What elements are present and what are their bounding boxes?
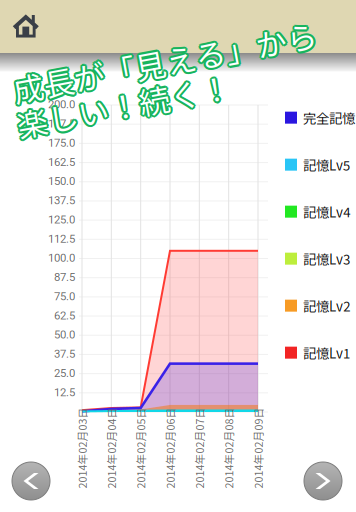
staticText: 成長が「見える」から bbox=[9, 68, 318, 112]
staticText: 楽しい！続く！ bbox=[11, 104, 228, 149]
staticText: 楽しい！続く！ bbox=[15, 103, 232, 147]
staticText: 楽しい！続く！ bbox=[14, 104, 231, 149]
button[interactable]: Home bbox=[0, 0, 52, 53]
staticText: 楽しい！続く！ bbox=[13, 105, 230, 149]
staticText: 2014年02月08日 bbox=[174, 426, 255, 441]
staticText: 成長が「見える」から bbox=[10, 66, 319, 111]
staticText: 成長が「見える」から bbox=[9, 70, 318, 114]
staticText: 137.5 bbox=[48, 194, 75, 207]
staticText: 楽しい！続く！ bbox=[14, 101, 231, 146]
staticText: 162.5 bbox=[48, 155, 75, 169]
staticText: 成長が「見える」から bbox=[9, 66, 318, 110]
staticText: 楽しい！続く！ bbox=[13, 103, 230, 147]
staticText: 2014年02月05日 bbox=[86, 426, 167, 441]
staticText: 2014年02月09日 bbox=[203, 426, 284, 441]
button[interactable]: Next page bbox=[304, 462, 342, 500]
staticText: 楽しい！続く！ bbox=[13, 101, 230, 145]
staticText: 成長が「見える」から bbox=[7, 69, 316, 114]
staticText: 記憶Lv4 bbox=[303, 202, 350, 221]
staticText: 125.0 bbox=[48, 213, 75, 226]
staticText: 150.0 bbox=[48, 175, 75, 188]
staticText: 2014年02月06日 bbox=[115, 426, 196, 441]
staticText: 完全記憶 bbox=[303, 108, 355, 127]
button[interactable]: Previous page bbox=[12, 462, 50, 500]
staticText: 成長が「見える」から bbox=[11, 68, 320, 112]
staticText: 楽しい！続く！ bbox=[11, 101, 228, 146]
staticText: 112.5 bbox=[48, 232, 75, 245]
staticText: 12.5 bbox=[54, 386, 75, 399]
staticText: 87.5 bbox=[54, 270, 75, 284]
staticText: 37.5 bbox=[54, 347, 75, 361]
staticText: 100.0 bbox=[48, 251, 75, 265]
staticText: 2014年02月07日 bbox=[144, 426, 225, 441]
staticText: 記憶Lv3 bbox=[303, 249, 350, 268]
staticText: 記憶Lv2 bbox=[303, 296, 350, 315]
staticText: 成長が「見える」から bbox=[7, 68, 316, 112]
staticText: 成長が「見える」から bbox=[10, 69, 319, 114]
staticText: 175.0 bbox=[48, 136, 75, 149]
staticText: 記憶Lv5 bbox=[303, 155, 350, 174]
staticText: 200.0 bbox=[48, 98, 75, 111]
staticText: 25.0 bbox=[54, 366, 75, 380]
staticText: 62.5 bbox=[54, 309, 75, 322]
staticText: 2014年02月03日 bbox=[27, 426, 108, 441]
staticText: 楽しい！続く！ bbox=[11, 103, 228, 147]
staticText: 成長が「見える」から bbox=[7, 66, 316, 111]
staticText: 75.0 bbox=[54, 290, 75, 303]
staticText: 記憶Lv1 bbox=[303, 343, 350, 362]
staticText: 187.5 bbox=[48, 117, 75, 130]
staticText: 50.0 bbox=[54, 328, 75, 341]
staticText: 2014年02月04日 bbox=[56, 426, 137, 441]
